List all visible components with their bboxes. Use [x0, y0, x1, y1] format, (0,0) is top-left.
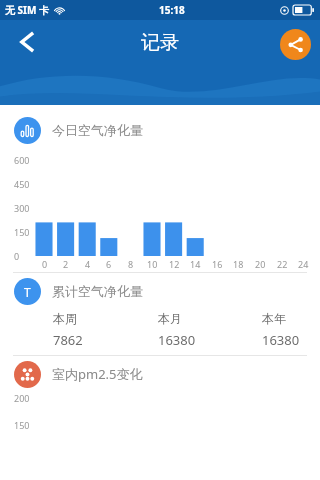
- button[interactable]: T: [0, 273, 320, 309]
- staticText: 20: [255, 258, 266, 270]
- staticText: 15:18: [159, 3, 185, 17]
- staticText: 0: [42, 258, 48, 270]
- staticText: 200: [14, 392, 30, 404]
- staticText: 16380: [158, 331, 196, 349]
- staticText: 12: [169, 258, 180, 270]
- staticText: 6: [106, 258, 112, 270]
- staticText: T: [24, 284, 31, 300]
- staticText: 150: [14, 419, 30, 431]
- staticText: 7862: [53, 331, 83, 349]
- staticText: 24: [298, 258, 309, 270]
- staticText: 300: [14, 202, 30, 214]
- staticText: 4: [85, 258, 91, 270]
- staticText: 16380: [262, 331, 300, 349]
- staticText: 18: [233, 258, 244, 270]
- staticText: 记录: [141, 31, 179, 55]
- button[interactable]: 室内pm2.5变化: [0, 356, 320, 392]
- staticText: 600: [14, 154, 30, 166]
- staticText: 8: [128, 258, 134, 270]
- staticText: 2: [63, 258, 69, 270]
- button[interactable]: 今日空气净化量: [0, 112, 320, 148]
- staticText: 室内pm2.5变化: [52, 365, 143, 383]
- staticText: 今日空气净化量: [52, 122, 143, 138]
- staticText: 本周: [53, 311, 77, 326]
- button[interactable]: Share: [280, 29, 311, 60]
- staticText: 本月: [158, 311, 182, 326]
- staticText: 150: [14, 226, 30, 238]
- staticText: 0: [14, 250, 20, 262]
- staticText: 16: [212, 258, 223, 270]
- staticText: 22: [277, 258, 288, 270]
- staticText: 450: [14, 178, 30, 190]
- staticText: 本年: [262, 311, 286, 326]
- button[interactable]: Back: [5, 20, 49, 64]
- staticText: 累计空气净化量: [52, 283, 143, 299]
- staticText: 10: [147, 258, 158, 270]
- staticText: 14: [190, 258, 201, 270]
- staticText: 无 SIM 卡: [5, 3, 50, 17]
